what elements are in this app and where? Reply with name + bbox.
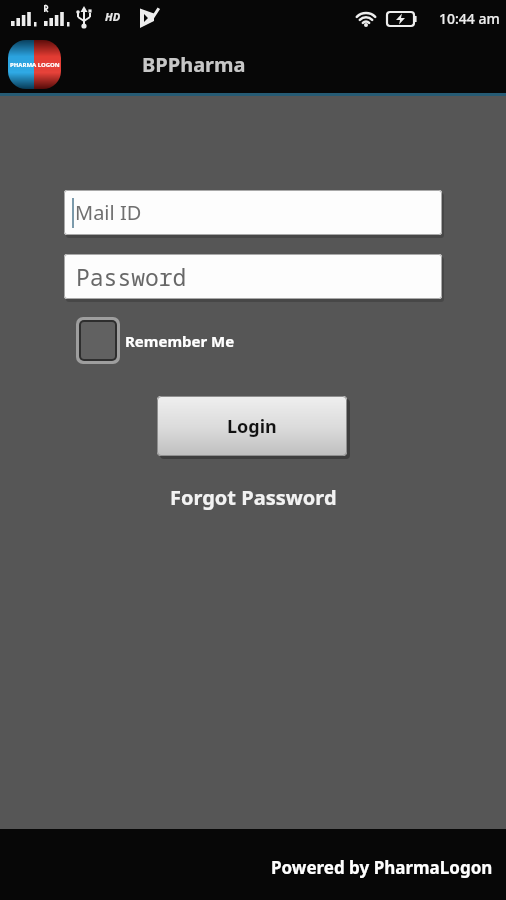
staticText: Password xyxy=(76,261,187,292)
staticText: Mail ID xyxy=(75,199,142,226)
button[interactable]: Login xyxy=(157,396,347,456)
staticText: HD xyxy=(105,9,121,24)
button[interactable]: Mail ID xyxy=(64,190,442,235)
button[interactable]: Forgot Password xyxy=(170,484,337,511)
staticText: Powered by PharmaLogon xyxy=(271,856,493,879)
staticText: Remember Me xyxy=(125,331,235,351)
staticText: BPPharma xyxy=(142,51,246,78)
button[interactable]: Remember Me xyxy=(76,317,235,364)
staticText: 10:44 am xyxy=(439,9,500,28)
staticText: Login xyxy=(227,414,277,439)
button[interactable]: Password xyxy=(64,254,442,299)
staticText: PHARMA LOGON xyxy=(10,61,60,69)
